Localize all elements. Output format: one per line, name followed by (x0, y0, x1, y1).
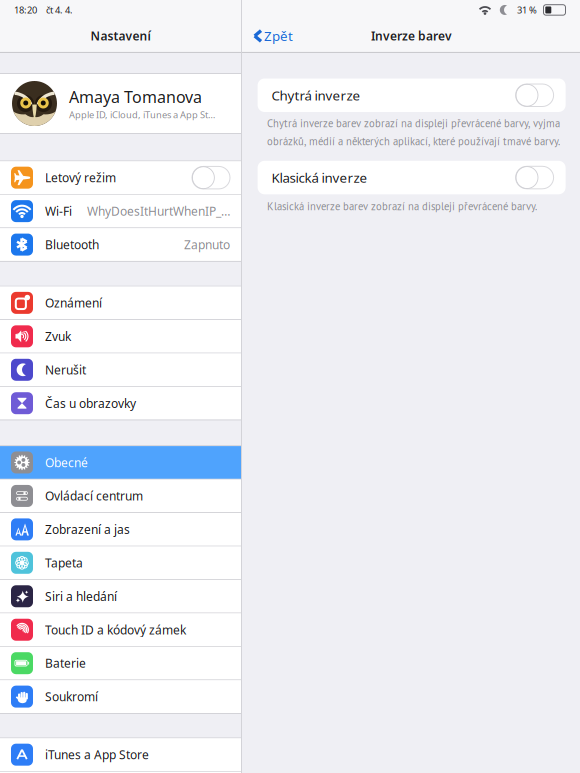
staticText: Baterie (45, 655, 86, 671)
button[interactable]: Bluetooth (0, 228, 241, 261)
staticText: Tapeta (45, 555, 83, 571)
button[interactable]: Letový režim (0, 161, 241, 194)
staticText: Klasická inverze (272, 169, 368, 186)
staticText: Wi-Fi (45, 203, 72, 219)
staticText: Letový režim (45, 170, 116, 186)
button[interactable]: Wi-Fi (0, 195, 241, 228)
button[interactable]: iTunes a App Store (0, 738, 241, 771)
staticText: Ovládací centrum (45, 488, 143, 504)
button[interactable]: Chytrá inverze (258, 78, 566, 112)
staticText: Amaya Tomanova (69, 86, 202, 107)
staticText: Siri a hledání (45, 588, 117, 604)
staticText: Obecné (45, 454, 88, 470)
staticText: WhyDoesItHurtWhenIP_… (87, 203, 230, 219)
staticText: Nastavení (90, 28, 150, 44)
staticText: 31 % (517, 4, 537, 16)
staticText: Zapnuto (184, 237, 230, 252)
button[interactable]: Baterie (0, 647, 241, 680)
staticText: Chytrá inverze barev zobrazí na displeji… (267, 116, 560, 130)
button[interactable]: Čas u obrazovky (0, 387, 241, 420)
button[interactable]: Amaya Tomanova (0, 74, 241, 133)
staticText: Zobrazení a jas (45, 521, 130, 537)
button[interactable]: Oznámení (0, 286, 241, 319)
staticText: Soukromí (45, 689, 98, 705)
staticText: Oznámení (45, 295, 102, 311)
button[interactable]: Touch ID a kódový zámek (0, 613, 241, 646)
button[interactable]: Zvuk (0, 320, 241, 353)
button[interactable]: Zpět (242, 20, 299, 52)
button[interactable]: Obecné (0, 446, 241, 479)
button[interactable]: Zobrazení a jas (0, 513, 241, 546)
staticText: Nerušit (45, 362, 86, 378)
button[interactable]: Tapeta (0, 546, 241, 579)
staticText: Klasická inverze barev zobrazí na disple… (267, 199, 537, 213)
button[interactable]: Klasická inverze (258, 161, 566, 194)
staticText: Chytrá inverze (272, 86, 361, 104)
staticText: Touch ID a kódový zámek (45, 622, 186, 638)
button[interactable]: Nerušit (0, 353, 241, 386)
staticText: Zpět (264, 27, 293, 45)
staticText: obrázků, médií a některých aplikací, kte… (267, 134, 560, 148)
staticText: iTunes a App Store (45, 747, 149, 763)
button[interactable]: Siri a hledání (0, 580, 241, 613)
staticText: Čas u obrazovky (45, 395, 136, 411)
staticText: 18:20 (14, 4, 37, 16)
staticText: Apple ID, iCloud, iTunes a App St… (69, 108, 215, 121)
button[interactable]: Ovládací centrum (0, 479, 241, 512)
staticText: Zvuk (45, 328, 71, 344)
staticText: Bluetooth (45, 237, 99, 252)
staticText: čt 4. 4. (46, 4, 73, 16)
staticText: Inverze barev (371, 28, 452, 44)
button[interactable]: Soukromí (0, 680, 241, 713)
